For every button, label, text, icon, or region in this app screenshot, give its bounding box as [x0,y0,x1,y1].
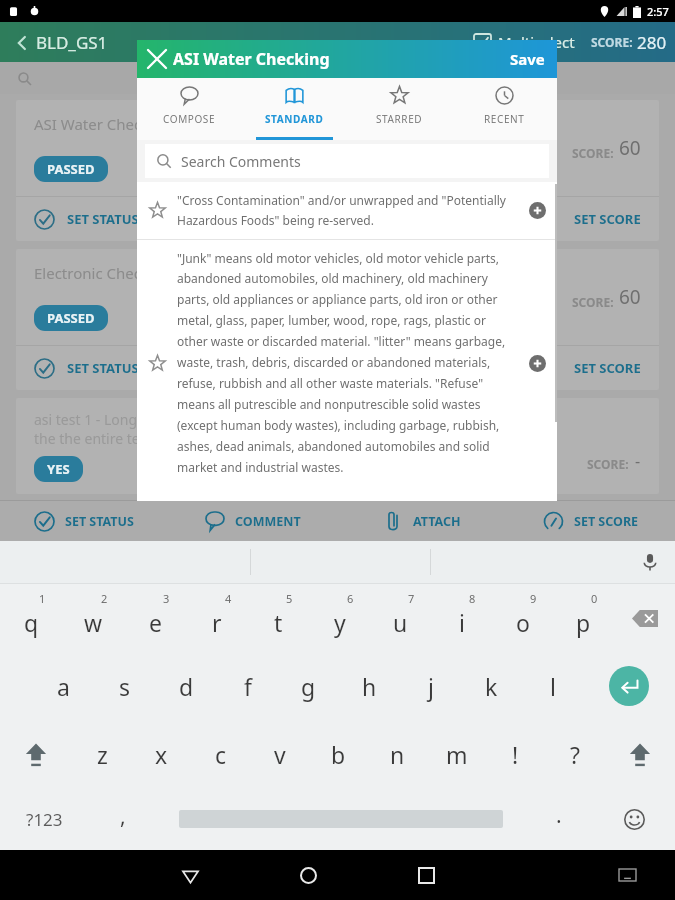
staticText: g [301,671,316,702]
staticText: STARRED [376,112,423,126]
staticText: t [274,607,283,638]
staticText: 2 [101,591,108,606]
button[interactable]: ASI Water Checking [16,100,659,241]
staticText: SCORE: [572,145,614,161]
button[interactable]: ?123 [0,788,89,850]
other: Back [14,35,30,51]
staticText: ? [570,739,580,770]
button[interactable]: z [72,720,132,788]
button[interactable]: g [278,652,339,720]
staticText: YES [47,460,70,478]
staticText: "Junk" means old motor vehicles, old mot… [177,250,509,476]
button[interactable]: Shift [0,720,72,788]
button[interactable]: COMPOSE [137,78,242,140]
button[interactable]: 6 [309,584,370,652]
button[interactable]: Recents [367,850,485,900]
button[interactable]: Star [137,202,177,219]
button[interactable]: b [309,720,368,788]
button[interactable]: s [94,652,156,720]
button[interactable]: ATTACH [337,501,506,541]
staticText: p [576,607,591,638]
button[interactable]: SET STATUS [16,346,574,390]
staticText: s [119,671,131,702]
button[interactable]: Add comment [517,355,557,372]
button[interactable]: STANDARD [242,78,347,140]
button[interactable]: Voice input [641,553,659,571]
button[interactable]: STARRED [347,78,452,140]
button[interactable]: f [217,652,278,720]
button[interactable]: Emoji [593,788,675,850]
button[interactable]: Enter [583,652,675,720]
staticText: c [215,739,227,770]
button[interactable]: Add comment [517,202,557,219]
button[interactable]: COMMENT [168,501,337,541]
button[interactable]: Back [131,850,249,900]
button[interactable]: Back [10,27,112,58]
button[interactable]: a [32,652,94,720]
button[interactable]: h [339,652,400,720]
button[interactable]: 7 [370,584,431,652]
button[interactable]: Star [137,355,177,372]
button[interactable]: m [427,720,486,788]
staticText: Save [510,49,545,69]
staticText: m [446,739,468,770]
button[interactable]: SET SCORE [574,197,659,241]
button[interactable]: ! [486,720,545,788]
button[interactable]: 2 [62,584,124,652]
button[interactable]: k [461,652,522,720]
button[interactable]: 1 [0,584,62,652]
button[interactable]: 5 [248,584,309,652]
staticText: n [390,739,405,770]
button[interactable]: Home [249,850,367,900]
button[interactable]: 8 [431,584,492,652]
button[interactable]: Star [137,182,557,239]
staticText: 280 [637,31,667,54]
button[interactable]: 0 [553,584,614,652]
button[interactable]: d [156,652,217,720]
staticText: 4 [225,591,232,606]
staticText: ! [512,739,519,770]
button[interactable]: 3 [124,584,186,652]
button[interactable]: asi test 1 - Long text so that it can di… [16,398,659,494]
button[interactable]: Keyboard [580,850,675,900]
staticText: SET SCORE [574,513,639,530]
button[interactable]: . [525,788,593,850]
button[interactable]: Space [157,788,525,850]
button[interactable]: Backspace [614,584,675,652]
button[interactable]: SET STATUS [16,197,574,241]
staticText: SCORE: [587,456,629,472]
button[interactable]: 9 [492,584,553,652]
staticText: r [212,607,222,638]
button[interactable]: x [132,720,191,788]
button[interactable]: RECENT [452,78,557,140]
staticText: Multiselect [498,32,575,52]
button[interactable]: ? [545,720,604,788]
staticText: 5 [286,591,293,606]
button[interactable]: , [89,788,157,850]
button[interactable]: c [191,720,250,788]
button[interactable]: v [250,720,309,788]
button[interactable]: 4 [186,584,248,652]
staticText: u [393,607,408,638]
button[interactable]: Star [137,240,557,486]
button[interactable]: l [522,652,583,720]
button[interactable]: SET STATUS [0,501,168,541]
staticText: ASI Water Checking [34,114,172,134]
staticText: "Cross Contamination" and/or unwrapped a… [177,192,509,229]
staticText: z [97,739,108,770]
staticText: Electronic Checking [34,263,172,283]
staticText: i [459,607,465,638]
button[interactable]: Shift [604,720,675,788]
button[interactable]: n [368,720,427,788]
button[interactable]: j [400,652,461,720]
button[interactable]: Electronic Checking [16,249,659,390]
button[interactable]: Save [498,43,557,75]
staticText: SET SCORE [574,210,641,228]
button[interactable]: Search Comments [145,144,549,178]
staticText: SET SCORE [574,359,641,377]
button[interactable]: Close [143,45,171,73]
button[interactable]: Multiselect [470,28,579,56]
button[interactable]: SET SCORE [574,346,659,390]
staticText: j [428,671,434,702]
button[interactable]: SET SCORE [506,501,675,541]
